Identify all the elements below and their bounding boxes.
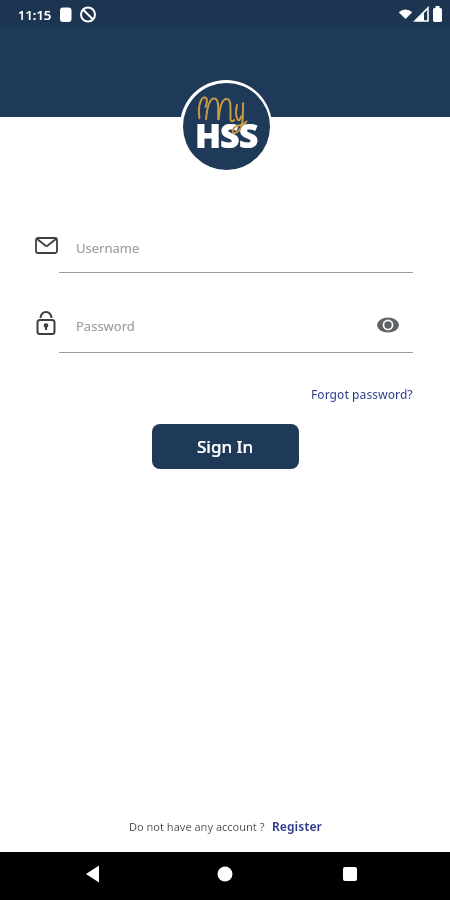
staticText: Username	[76, 239, 140, 257]
button[interactable]: Username	[28, 230, 450, 274]
button[interactable]: Forgot password?	[311, 386, 413, 402]
staticText: 11:15	[18, 6, 52, 24]
button[interactable]	[150, 852, 300, 900]
staticText: Register	[272, 818, 322, 834]
button[interactable]	[300, 852, 450, 900]
button[interactable]: Sign In	[152, 424, 299, 469]
staticText: HSS	[195, 112, 258, 158]
staticText: Password	[76, 317, 135, 335]
button[interactable]	[370, 310, 406, 340]
button[interactable]: Password	[28, 308, 450, 352]
button[interactable]: Register	[272, 818, 322, 834]
button[interactable]	[0, 852, 150, 900]
staticText: Do not have any account ?	[129, 819, 265, 834]
staticText: Sign In	[197, 435, 254, 458]
staticText: Forgot password?	[311, 386, 413, 402]
